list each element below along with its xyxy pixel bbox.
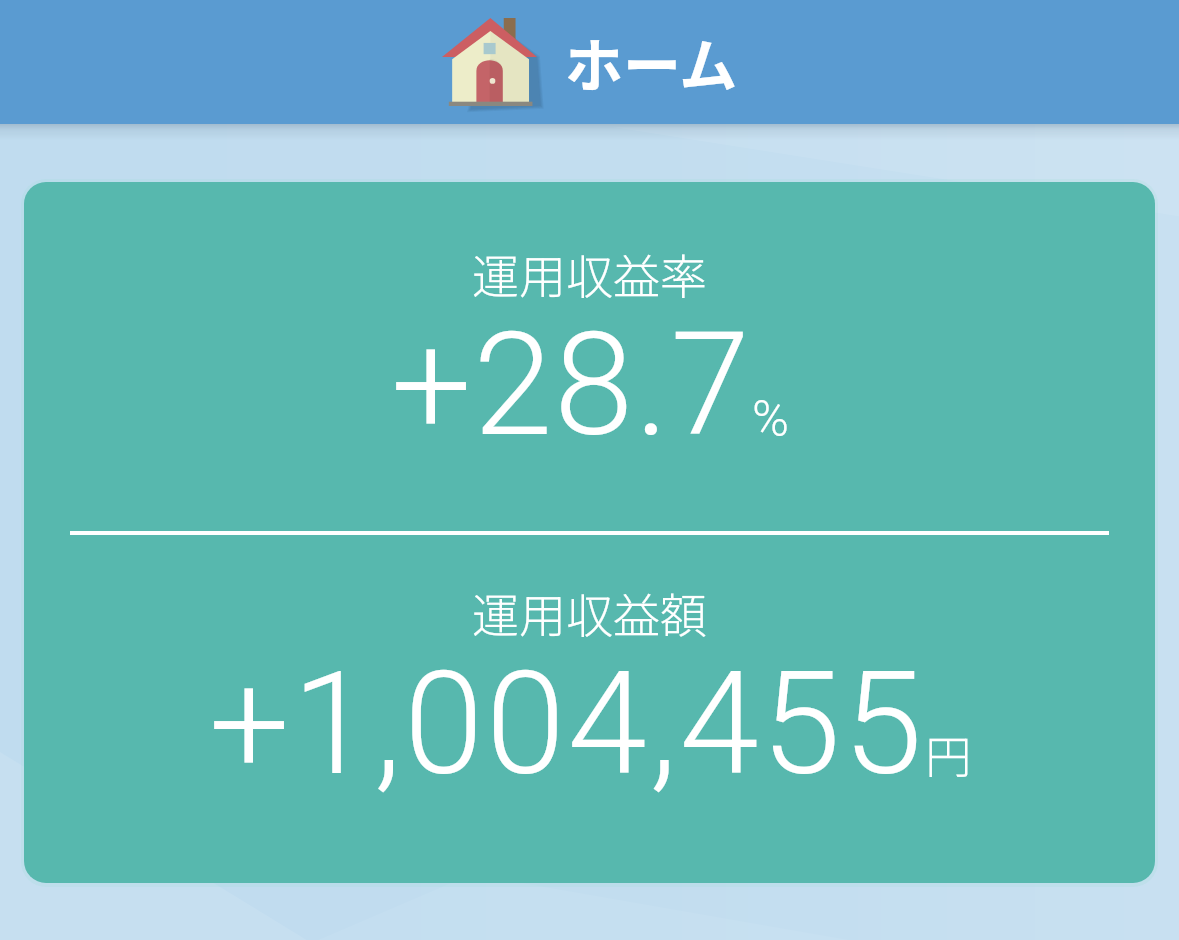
staticText: 運用収益率 [472, 239, 707, 307]
other: Home [442, 18, 537, 106]
staticText: 運用収益額 [472, 578, 707, 646]
button[interactable]: Home [0, 0, 1179, 124]
staticText: 円 [925, 721, 971, 788]
staticText: % [752, 390, 789, 449]
button[interactable]: 運用収益率 [24, 182, 1155, 883]
staticText: +1,004,455 [209, 640, 925, 808]
staticText: +28.7 [391, 301, 752, 469]
staticText: ホーム [565, 20, 738, 104]
